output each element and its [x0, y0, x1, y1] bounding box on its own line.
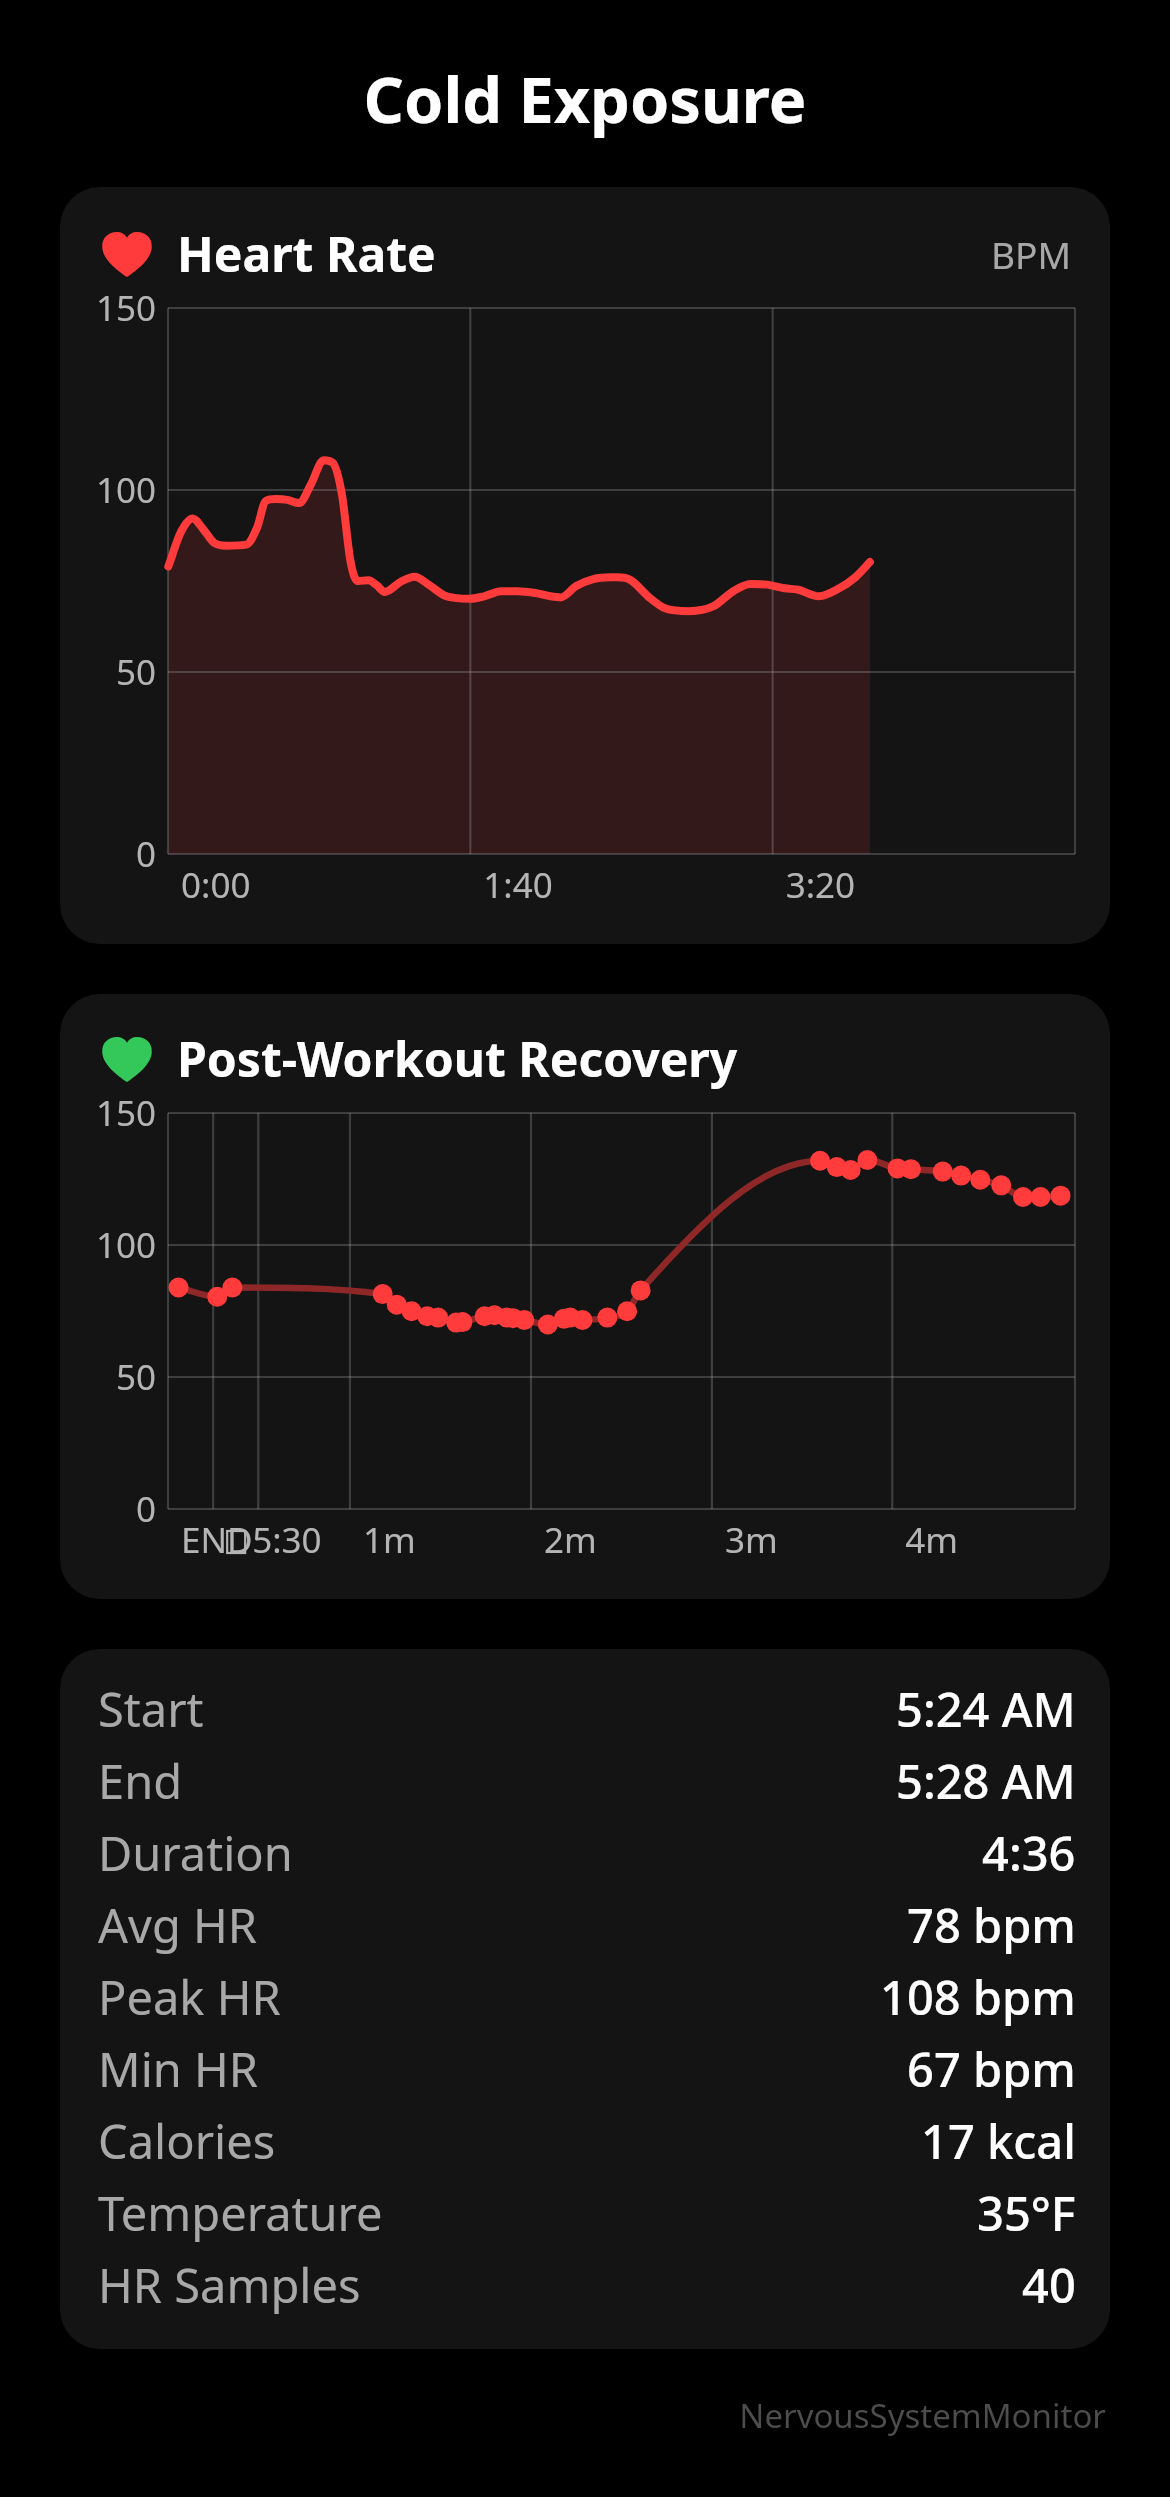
button[interactable]: Avg HR — [98, 1889, 1076, 1961]
button[interactable]: Calories — [98, 2105, 1076, 2177]
staticText: 78 bpm — [907, 1893, 1076, 1957]
button[interactable]: Min HR — [98, 2033, 1076, 2105]
staticText: HR Samples — [98, 2253, 361, 2317]
button[interactable]: Duration — [98, 1817, 1076, 1889]
button[interactable]: Heart Rate chart — [60, 187, 1110, 944]
staticText: Temperature — [98, 2181, 383, 2245]
staticText: 4:36 — [982, 1821, 1076, 1885]
button[interactable]: Workout summary — [60, 1649, 1110, 2349]
staticText: 40 — [1022, 2253, 1076, 2317]
staticText: Start — [98, 1677, 204, 1741]
staticText: 35°F — [977, 2181, 1076, 2245]
staticText: 17 kcal — [921, 2109, 1076, 2173]
staticText: 67 bpm — [907, 2037, 1076, 2101]
staticText: Calories — [98, 2109, 276, 2173]
button[interactable]: HR Samples — [98, 2249, 1076, 2321]
button[interactable]: Post-Workout Recovery chart — [60, 994, 1110, 1599]
staticText: Avg HR — [98, 1893, 258, 1957]
staticText: NervousSystemMonitor — [0, 2393, 1106, 2438]
staticText: Peak HR — [98, 1965, 281, 2029]
staticText: Cold Exposure — [0, 56, 1170, 142]
staticText: Min HR — [98, 2037, 259, 2101]
button[interactable]: Peak HR — [98, 1961, 1076, 2033]
staticText: 108 bpm — [880, 1965, 1076, 2029]
staticText: End — [98, 1749, 183, 1813]
staticText: 5:24 AM — [896, 1677, 1076, 1741]
button[interactable]: Temperature — [98, 2177, 1076, 2249]
button[interactable]: Start — [98, 1673, 1076, 1745]
staticText: 5:28 AM — [896, 1749, 1076, 1813]
button[interactable]: End — [98, 1745, 1076, 1817]
staticText: Duration — [98, 1821, 293, 1885]
